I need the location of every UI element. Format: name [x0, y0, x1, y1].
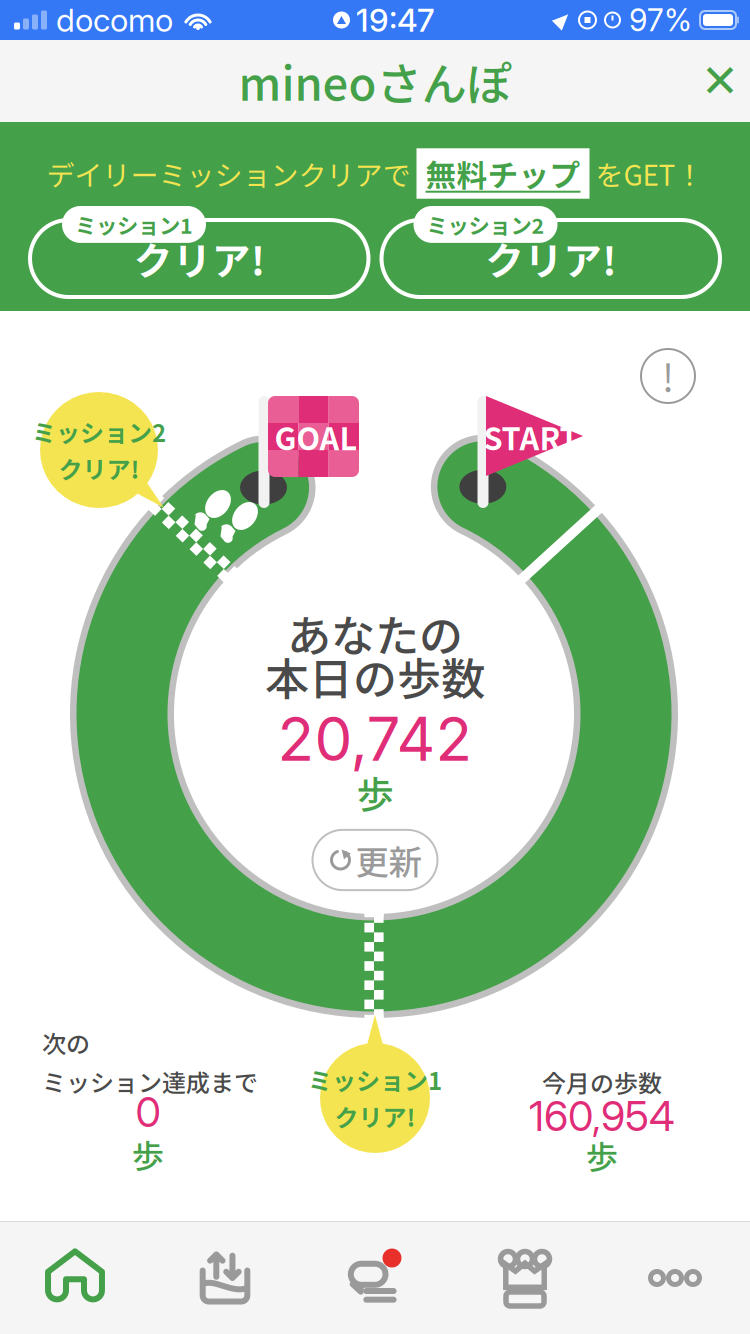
- staticText: mineoさんぽ: [238, 48, 511, 114]
- staticText: デイリーミッションクリアで: [46, 153, 410, 194]
- staticText: ミッション1: [75, 209, 193, 240]
- button[interactable]: データ: [150, 1222, 300, 1334]
- button[interactable]: クリア!: [30, 220, 368, 297]
- staticText: ミッション達成まで: [42, 1064, 258, 1099]
- staticText: 19:47: [356, 1, 434, 39]
- staticText: ミッション2: [32, 414, 166, 449]
- staticText: 次の: [42, 1025, 90, 1060]
- button[interactable]: 更新: [312, 830, 437, 890]
- staticText: 今月の歩数: [542, 1065, 662, 1099]
- button[interactable]: Close: [690, 51, 750, 111]
- staticText: GOAL: [274, 415, 357, 459]
- button[interactable]: クリア!: [381, 220, 720, 297]
- staticText: クリア!: [58, 451, 139, 486]
- button[interactable]: メッセージ: [300, 1222, 450, 1334]
- staticText: 歩: [132, 1131, 164, 1177]
- staticText: ミッション1: [308, 1062, 442, 1097]
- staticText: 160,954: [529, 1091, 675, 1141]
- staticText: 更新: [355, 836, 421, 884]
- button[interactable]: Information: [641, 349, 695, 403]
- staticText: 歩: [586, 1132, 618, 1178]
- button[interactable]: その他: [600, 1222, 750, 1334]
- staticText: 歩: [356, 765, 393, 819]
- button[interactable]: ホーム: [0, 1222, 150, 1334]
- staticText: 97%: [629, 1, 692, 38]
- staticText: あなたの: [287, 601, 463, 665]
- staticText: ミッション2: [426, 209, 544, 240]
- staticText: クリア!: [134, 230, 265, 286]
- staticText: !: [662, 349, 674, 403]
- staticText: ✕: [701, 55, 739, 107]
- staticText: 20,742: [277, 703, 472, 775]
- staticText: 無料チップ: [425, 151, 580, 196]
- staticText: をGET！: [595, 153, 703, 194]
- staticText: クリア!: [334, 1099, 415, 1134]
- staticText: 本日の歩数: [265, 644, 485, 708]
- staticText: docomo: [56, 1, 173, 39]
- staticText: クリア!: [485, 230, 616, 286]
- staticText: 0: [135, 1087, 160, 1137]
- staticText: START: [483, 415, 578, 459]
- button[interactable]: ランキング: [450, 1222, 600, 1334]
